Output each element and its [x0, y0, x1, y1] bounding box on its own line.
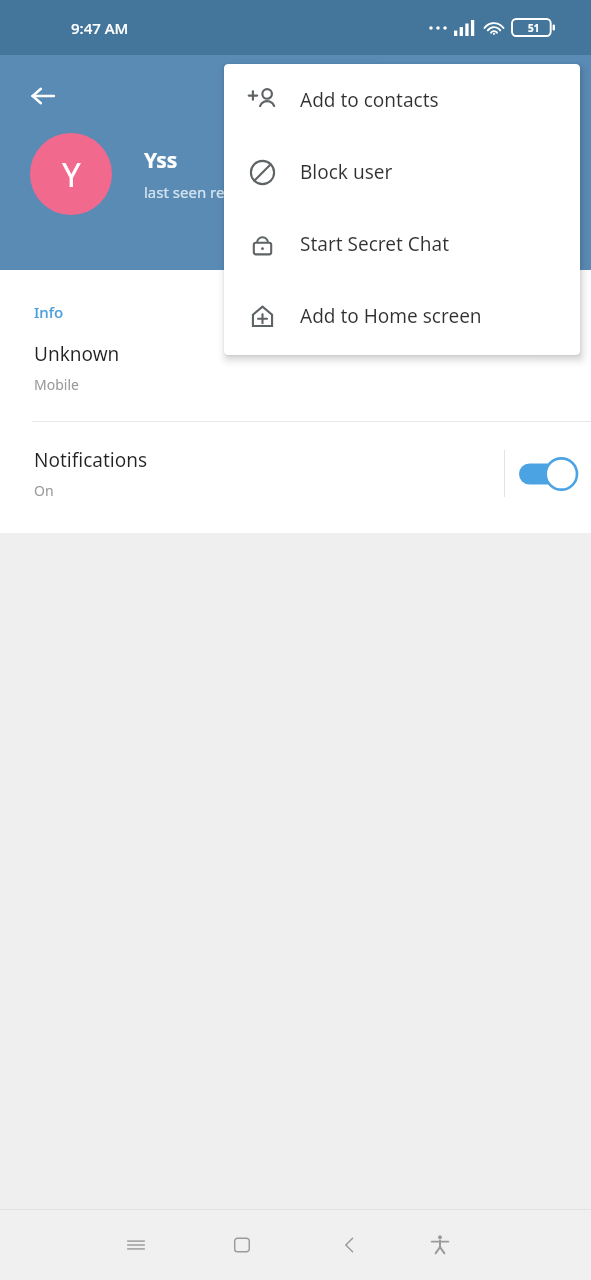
- staticText: Yss: [144, 146, 178, 175]
- button[interactable]: Notifications: [0, 422, 591, 525]
- staticText: 51: [528, 21, 540, 35]
- button[interactable]: Unknown: [0, 339, 591, 402]
- button[interactable]: Menu: [113, 1222, 159, 1268]
- staticText: 9:47 AM: [71, 18, 129, 38]
- button[interactable]: Block user: [224, 136, 580, 208]
- staticText: Block user: [300, 159, 393, 185]
- button[interactable]: Back: [327, 1222, 373, 1268]
- button[interactable]: Add to contacts: [224, 64, 580, 136]
- staticText: Notifications: [34, 447, 148, 473]
- staticText: Y: [62, 152, 81, 197]
- staticText: Info: [34, 302, 64, 322]
- staticText: Add to Home screen: [300, 303, 482, 329]
- staticText: Unknown: [34, 341, 120, 367]
- staticText: Start Secret Chat: [300, 231, 450, 257]
- button[interactable]: Back: [22, 75, 64, 117]
- button[interactable]: Home: [219, 1222, 265, 1268]
- button[interactable]: Add to Home screen: [224, 280, 580, 352]
- staticText: last seen recently: [144, 182, 267, 202]
- staticText: Add to contacts: [300, 87, 439, 113]
- button[interactable]: Accessibility: [417, 1222, 463, 1268]
- staticText: Mobile: [34, 375, 79, 394]
- button[interactable]: Notifications toggle: [505, 422, 591, 525]
- button[interactable]: Y: [30, 133, 112, 215]
- staticText: On: [34, 481, 54, 500]
- button[interactable]: Start Secret Chat: [224, 208, 580, 280]
